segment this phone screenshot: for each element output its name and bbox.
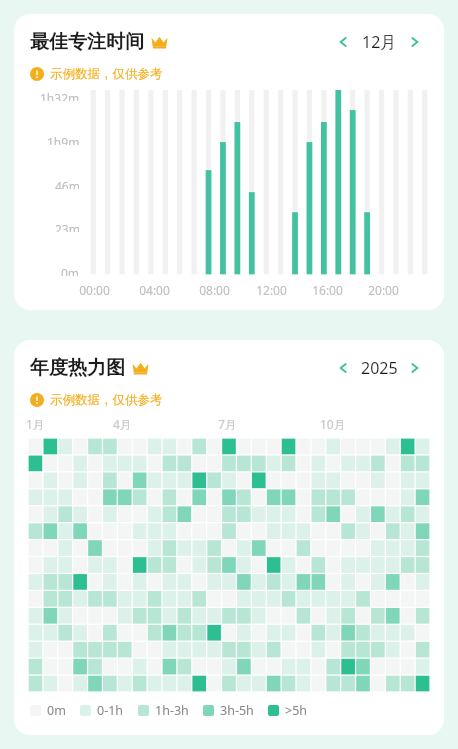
staticText: 00:00 <box>79 282 110 298</box>
staticText: 1月 <box>26 416 45 432</box>
staticText: 年度热力图 <box>30 356 125 380</box>
staticText: 1h32m <box>40 90 80 101</box>
staticText: 04:00 <box>139 282 170 298</box>
button[interactable]: 3h-5h <box>203 702 254 719</box>
staticText: 10月 <box>320 416 346 432</box>
staticText: 20:00 <box>368 282 399 298</box>
staticText: 46m <box>55 178 80 189</box>
staticText: 16:00 <box>312 282 343 298</box>
staticText: 0-1h <box>97 702 124 719</box>
staticText: 最佳专注时间 <box>30 30 144 54</box>
button[interactable]: 1h-3h <box>138 702 189 719</box>
staticText: 08:00 <box>199 282 230 298</box>
button[interactable]: >5h <box>268 702 308 719</box>
button[interactable]: Next <box>402 355 428 381</box>
staticText: 3h-5h <box>220 702 254 719</box>
staticText: 23m <box>55 221 80 232</box>
button[interactable]: Next <box>402 29 428 55</box>
staticText: 示例数据，仅供参考 <box>50 392 163 408</box>
staticText: 0m <box>47 702 66 719</box>
staticText: 4月 <box>113 416 132 432</box>
staticText: >5h <box>285 702 308 719</box>
staticText: 1h9m <box>47 134 80 145</box>
staticText: 示例数据，仅供参考 <box>50 66 163 82</box>
button[interactable]: Previous <box>330 355 356 381</box>
staticText: 12:00 <box>256 282 287 298</box>
staticText: 7月 <box>218 416 237 432</box>
button[interactable]: 0-1h <box>80 702 124 719</box>
staticText: 2025 <box>361 357 398 379</box>
button[interactable]: 0m <box>30 702 66 719</box>
staticText: 12月 <box>362 31 397 53</box>
staticText: 0m <box>61 265 80 276</box>
staticText: 1h-3h <box>155 702 189 719</box>
button[interactable]: Previous <box>330 29 356 55</box>
